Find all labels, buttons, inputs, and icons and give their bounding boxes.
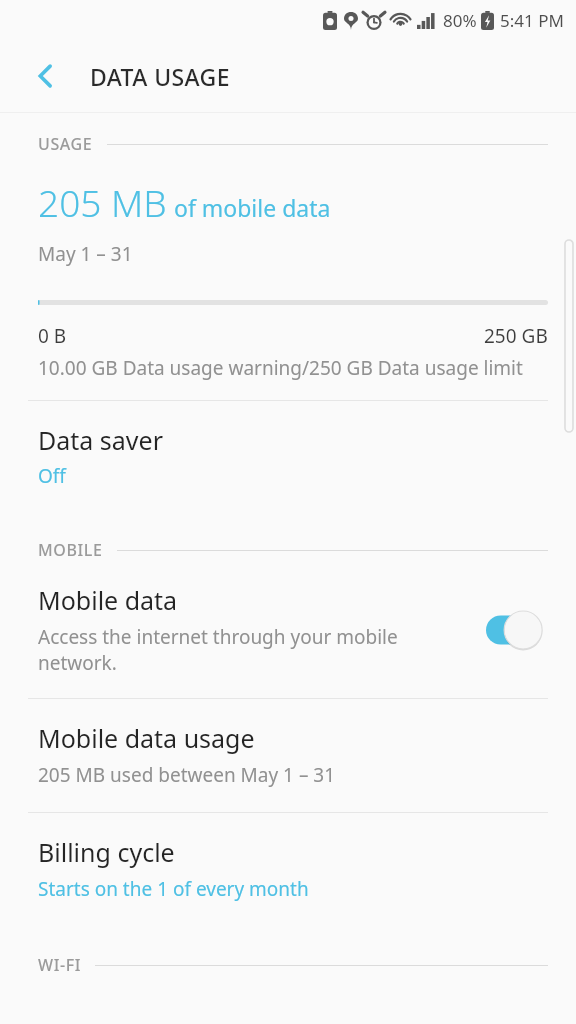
button[interactable]: Back	[18, 48, 74, 104]
staticText: May 1 – 31	[38, 241, 133, 267]
staticText: 10.00 GB Data usage warning/250 GB Data …	[38, 355, 523, 381]
staticText: Billing cycle	[38, 835, 175, 869]
staticText: 0 B	[38, 323, 67, 349]
staticText: Off	[38, 463, 66, 489]
staticText: 250 GB	[484, 323, 548, 349]
staticText: 5:41 PM	[500, 9, 564, 32]
staticText: Access the internet through your mobile …	[38, 624, 466, 676]
button[interactable]: Mobile data toggle, on	[486, 610, 548, 650]
staticText: WI-FI	[38, 954, 81, 976]
button[interactable]: Data saver	[0, 401, 576, 513]
button[interactable]: Billing cycle	[0, 813, 576, 926]
staticText: 205 MB used between May 1 – 31	[38, 762, 336, 788]
button[interactable]: Mobile data	[0, 561, 576, 698]
staticText: Starts on the 1 of every month	[38, 876, 309, 902]
button[interactable]: Mobile data usage	[0, 699, 576, 812]
staticText: of mobile data	[174, 192, 331, 223]
staticText: Data saver	[38, 423, 163, 457]
staticText: DATA USAGE	[90, 61, 230, 92]
staticText: 205 MB	[38, 177, 167, 227]
staticText: USAGE	[38, 133, 93, 155]
staticText: MOBILE	[38, 539, 103, 561]
staticText: 80%	[443, 9, 477, 32]
staticText: Mobile data	[38, 583, 178, 617]
staticText: Mobile data usage	[38, 721, 255, 755]
